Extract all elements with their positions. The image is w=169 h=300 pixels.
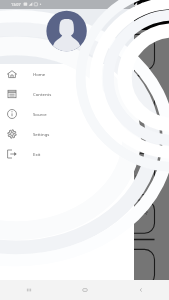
staticText: Exit	[33, 151, 41, 157]
button[interactable]: Home	[0, 64, 134, 84]
staticText: چرا ارتباط	[110, 166, 148, 181]
staticText: 13:07	[11, 2, 21, 7]
staticText: Settings	[33, 131, 50, 137]
button[interactable]: Source	[0, 104, 134, 124]
button[interactable]: Home	[57, 280, 113, 300]
button[interactable]: Recent apps	[0, 280, 57, 300]
button[interactable]: Contents	[0, 84, 134, 104]
staticText: چگونه	[110, 209, 148, 215]
button[interactable]: Settings	[0, 124, 134, 144]
staticText: Source	[33, 111, 47, 117]
button[interactable]: Exit	[0, 144, 134, 164]
staticText: Contents	[33, 91, 52, 97]
staticText: Home	[33, 71, 46, 77]
